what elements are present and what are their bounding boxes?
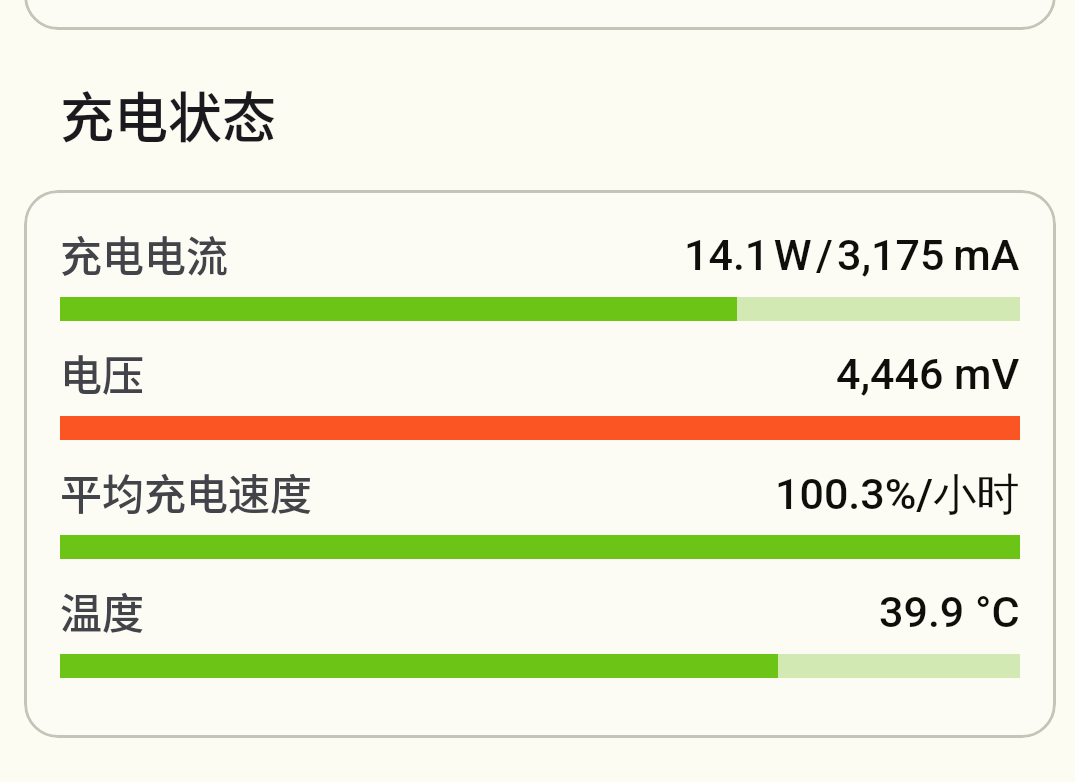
staticText: 100.3%/小时	[775, 468, 1020, 522]
staticText: 39.9 °C	[879, 587, 1020, 637]
staticText: 电压	[60, 342, 145, 403]
staticText: 4,446 mV	[836, 349, 1020, 399]
staticText: 14.1 W / 3,175 mA	[684, 230, 1020, 280]
staticText: 温度	[60, 580, 145, 641]
button[interactable]: 电压	[60, 356, 1020, 440]
other: Previous card	[24, 0, 1056, 30]
staticText: 平均充电速度	[60, 461, 313, 522]
button[interactable]: 温度	[60, 594, 1020, 678]
button[interactable]: 平均充电速度	[60, 475, 1020, 559]
button[interactable]: 充电电流	[60, 237, 1020, 321]
staticText: 充电电流	[60, 223, 229, 284]
staticText: 充电状态	[60, 75, 276, 153]
